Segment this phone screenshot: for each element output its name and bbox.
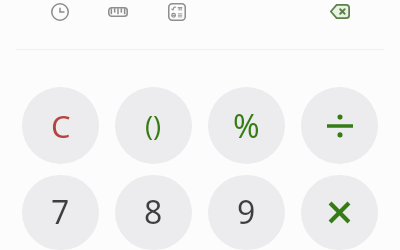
button[interactable]: 9 <box>208 175 285 250</box>
staticText: 8 <box>144 190 163 234</box>
staticText: 7 <box>51 190 70 234</box>
button[interactable]: History <box>44 0 76 24</box>
button[interactable]: Backspace <box>324 0 356 24</box>
button[interactable]: 7 <box>22 175 99 250</box>
button[interactable]: C <box>22 87 99 164</box>
staticText: () <box>145 107 162 144</box>
button[interactable] <box>301 87 378 164</box>
staticText: % <box>233 104 260 148</box>
button[interactable] <box>301 175 378 250</box>
staticText: 9 <box>237 190 256 234</box>
button[interactable]: 8 <box>115 175 192 250</box>
button[interactable]: Scientific calculator <box>161 0 193 24</box>
button[interactable]: () <box>115 87 192 164</box>
staticText: C <box>51 105 71 147</box>
button[interactable]: Unit converter <box>102 0 134 24</box>
button[interactable]: % <box>208 87 285 164</box>
